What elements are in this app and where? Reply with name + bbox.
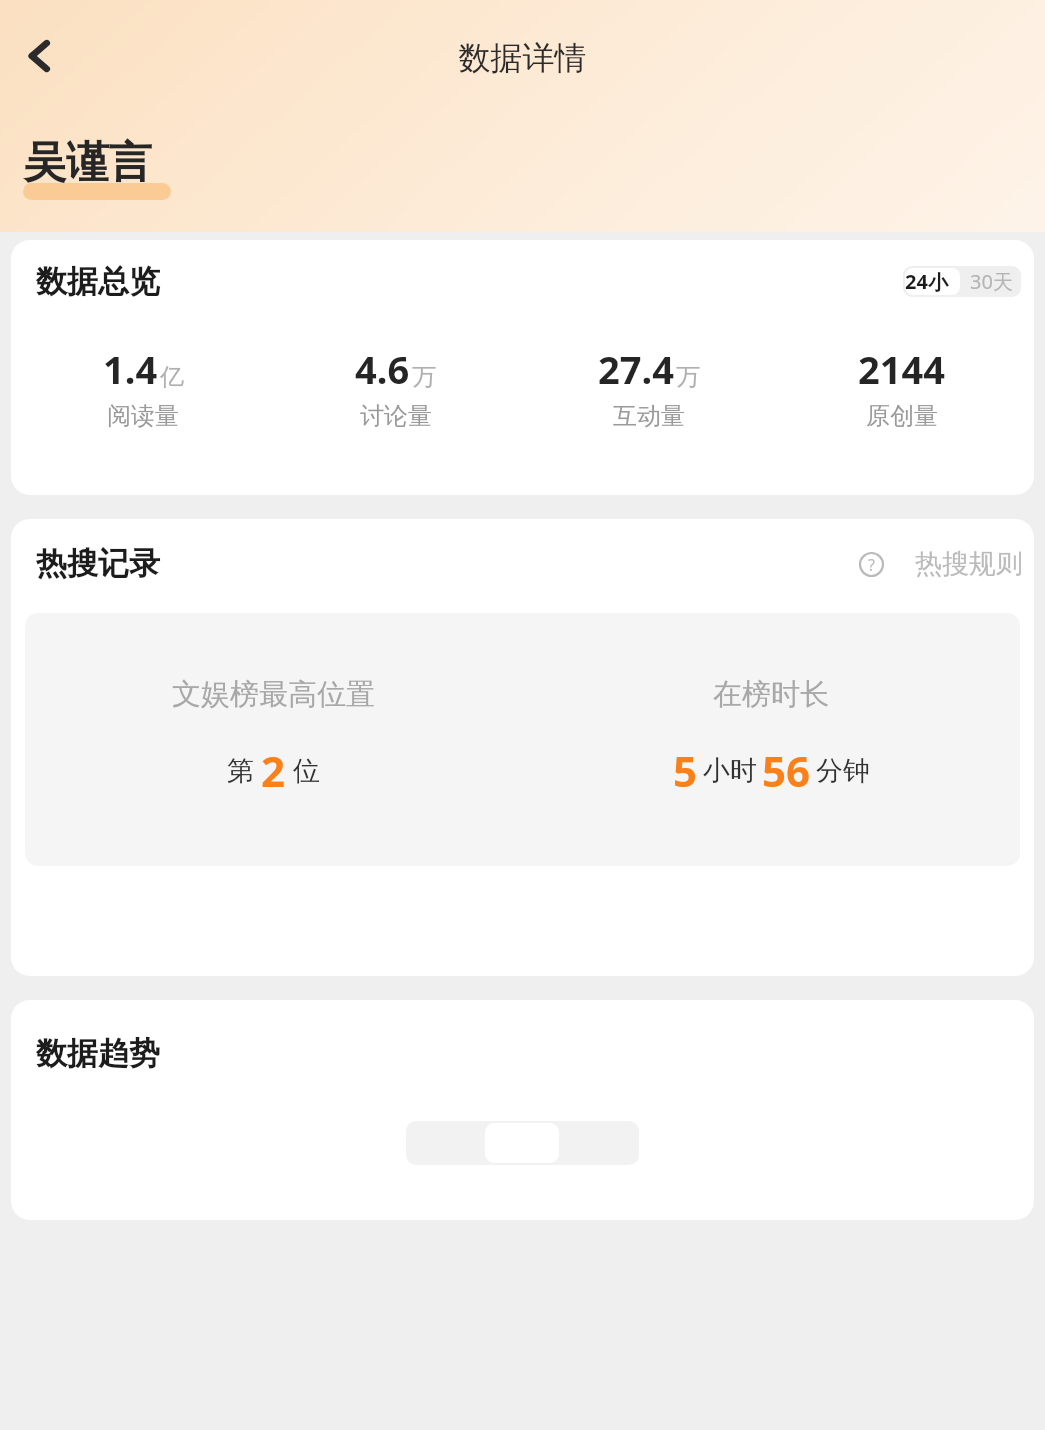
staticText: 在榜时长 [713,676,829,713]
button[interactable]: 2144 [775,343,1028,431]
button[interactable]: Back [10,26,70,86]
staticText: 56 [762,742,811,799]
staticText: 互动量 [613,401,685,431]
staticText: 4.6 [355,343,410,395]
staticText: 5 [673,742,698,799]
staticText: 原创量 [866,401,938,431]
staticText: 24小时 [905,268,960,295]
staticText: 讨论量 [360,401,432,431]
staticText: 30天 [970,268,1013,295]
staticText: 亿 [160,362,184,392]
staticText: 万 [676,362,700,392]
staticText: 数据趋势 [36,1034,160,1073]
button[interactable]: 4.6 [269,343,522,431]
staticText: 第 [227,754,254,788]
staticText: 1.4 [103,343,158,395]
staticText: 文娱榜最高位置 [172,676,375,713]
staticText: 热搜规则 [915,547,1023,581]
staticText: 位 [293,754,320,788]
staticText: 万 [412,362,436,392]
staticText: 数据总览 [36,262,160,301]
button[interactable]: 30天 [962,266,1021,297]
staticText: 27.4 [598,343,674,395]
staticText: 热搜记录 [36,544,160,583]
button[interactable]: 24小时 [905,268,960,295]
staticText: 阅读量 [107,401,179,431]
button[interactable]: 27.4 [522,343,775,431]
staticText: 数据详情 [0,38,1045,78]
staticText: 分钟 [816,754,870,788]
staticText: 2 [261,742,286,799]
button[interactable]: 1.4 [17,343,269,431]
button[interactable]: ? [859,547,1023,581]
staticText: ? [868,554,875,576]
staticText: 吴谨言 [23,136,152,190]
staticText: 2144 [858,343,945,395]
staticText: 小时 [703,754,757,788]
